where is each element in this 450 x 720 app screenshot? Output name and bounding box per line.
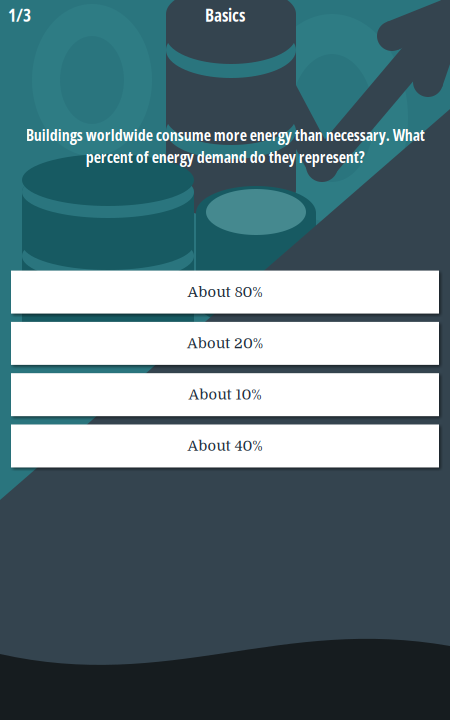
staticText: About 20%	[187, 335, 263, 352]
staticText: 1/3	[8, 3, 31, 27]
staticText: About 10%	[188, 386, 261, 403]
staticText: About 80%	[187, 284, 262, 300]
button[interactable]: About 20%	[11, 322, 439, 365]
button[interactable]: About 10%	[11, 373, 439, 416]
staticText: About 40%	[187, 438, 262, 454]
staticText: Basics	[205, 3, 245, 27]
button[interactable]: About 80%	[11, 271, 439, 314]
button[interactable]: About 40%	[11, 424, 439, 467]
staticText: Buildings worldwide consume more energy …	[25, 124, 424, 168]
